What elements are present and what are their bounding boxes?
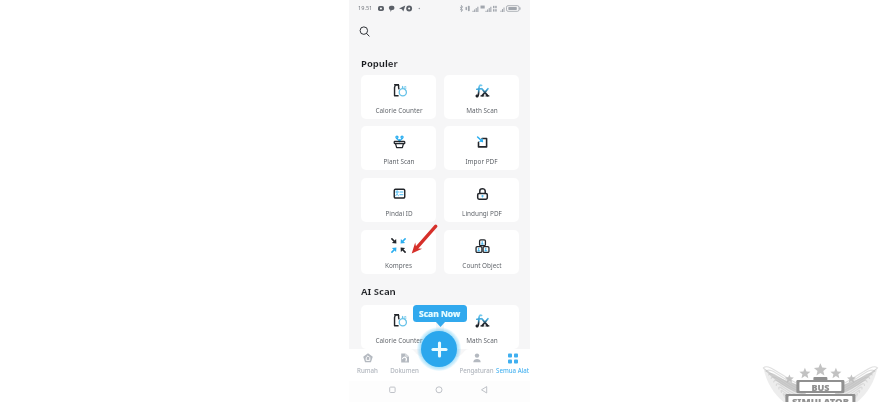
- staticText: Plant Scan: [383, 157, 415, 166]
- button[interactable]: Pengaturan: [458, 349, 494, 380]
- staticText: Scan Now: [419, 308, 461, 320]
- staticText: Calorie Counter: [375, 336, 423, 345]
- button[interactable]: Rumah: [349, 349, 385, 380]
- button[interactable]: Dokumen: [386, 349, 422, 380]
- staticText: SIMULATOR: [786, 395, 855, 402]
- staticText: Pengaturan: [459, 366, 494, 374]
- staticText: AI Scan: [361, 285, 396, 298]
- staticText: Impor PDF: [465, 157, 498, 166]
- staticText: 19.51: [358, 4, 373, 12]
- button[interactable]: Lindungi PDF: [444, 178, 519, 222]
- staticText: Pindai ID: [385, 209, 413, 218]
- button[interactable]: Semua Alat: [494, 349, 530, 380]
- staticText: Math Scan: [466, 106, 498, 115]
- staticText: Lindungi PDF: [462, 209, 502, 218]
- button[interactable]: Plant Scan: [361, 126, 436, 170]
- staticText: Math Scan: [466, 336, 498, 345]
- button[interactable]: Scan: [421, 331, 457, 367]
- staticText: Populer: [361, 57, 398, 70]
- staticText: Rumah: [357, 366, 378, 374]
- button[interactable]: Math Scan: [444, 305, 519, 349]
- staticText: BUS: [808, 381, 833, 393]
- staticText: Count Object: [462, 261, 502, 270]
- button[interactable]: Math Scan: [444, 75, 519, 119]
- staticText: Calorie Counter: [375, 106, 423, 115]
- button[interactable]: Count Object: [444, 230, 519, 274]
- button[interactable]: Calorie Counter: [361, 75, 436, 119]
- staticText: Semua Alat: [496, 366, 529, 374]
- button[interactable]: Impor PDF: [444, 126, 519, 170]
- button[interactable]: Calorie Counter: [361, 305, 436, 349]
- button[interactable]: Pindai ID: [361, 178, 436, 222]
- button[interactable]: Scan Now: [413, 305, 467, 322]
- staticText: Kompres: [385, 261, 412, 270]
- staticText: Dokumen: [390, 366, 419, 374]
- button[interactable]: Kompres: [361, 230, 436, 274]
- button[interactable]: Search: [358, 25, 370, 37]
